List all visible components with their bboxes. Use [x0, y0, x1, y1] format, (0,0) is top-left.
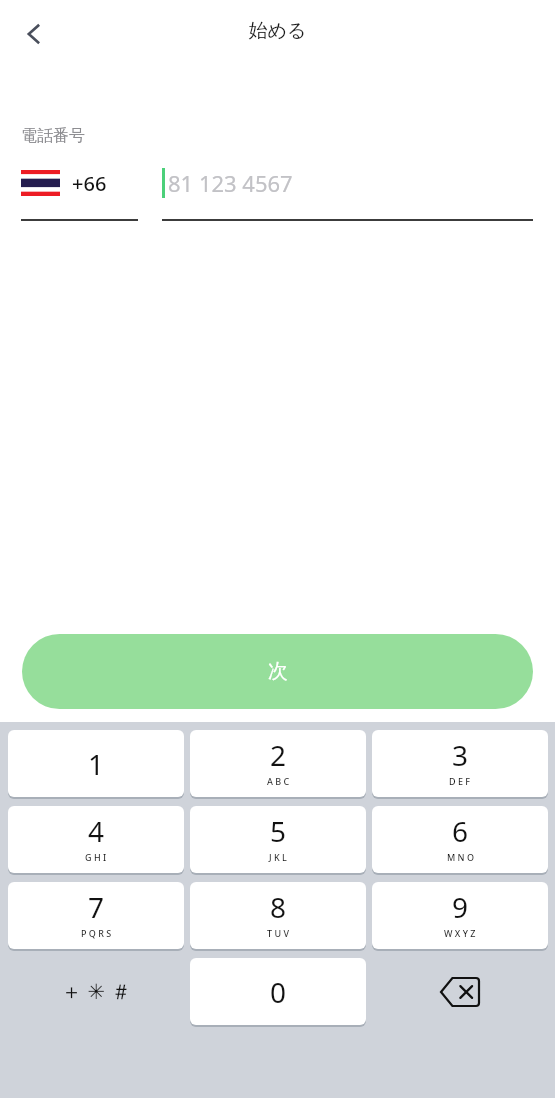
staticText: G H I	[85, 851, 107, 863]
button[interactable]: 5	[190, 806, 366, 873]
staticText: 9	[452, 888, 469, 926]
staticText: 6	[452, 812, 469, 850]
button[interactable]: 2	[190, 730, 366, 797]
button[interactable]: Back	[8, 8, 60, 60]
staticText: 8	[270, 888, 287, 926]
button[interactable]: 0	[190, 958, 366, 1025]
staticText: D E F	[449, 775, 471, 787]
staticText: 3	[452, 736, 469, 774]
button[interactable]: 7	[8, 882, 184, 949]
button[interactable]: 6	[372, 806, 548, 873]
button[interactable]: 81 123 4567	[162, 160, 533, 206]
staticText: 7	[88, 888, 105, 926]
staticText: 81 123 4567	[168, 168, 293, 198]
staticText: 次	[268, 659, 288, 684]
button[interactable]: 9	[372, 882, 548, 949]
staticText: T U V	[267, 927, 289, 939]
button[interactable]: 1	[8, 730, 184, 797]
button[interactable]: 3	[372, 730, 548, 797]
staticText: 5	[270, 812, 287, 850]
staticText: 1	[88, 745, 105, 783]
staticText: J K L	[269, 851, 287, 863]
button[interactable]: 4	[8, 806, 184, 873]
button[interactable]: +66	[21, 160, 139, 206]
staticText: M N O	[447, 851, 474, 863]
staticText: P Q R S	[81, 927, 112, 939]
button[interactable]: 8	[190, 882, 366, 949]
staticText: A B C	[267, 775, 290, 787]
button[interactable]: 次	[22, 634, 533, 709]
staticText: W X Y Z	[444, 927, 476, 939]
button[interactable]: Backspace	[372, 958, 548, 1025]
staticText: 電話番号	[21, 126, 85, 146]
staticText: 始める	[0, 19, 555, 43]
staticText: 2	[270, 736, 287, 774]
staticText: ＋ ✳ ＃	[61, 977, 132, 1006]
staticText: 0	[270, 973, 287, 1011]
button[interactable]: ＋ ✳ ＃	[8, 958, 184, 1025]
staticText: +66	[72, 170, 107, 197]
staticText: 4	[88, 812, 105, 850]
